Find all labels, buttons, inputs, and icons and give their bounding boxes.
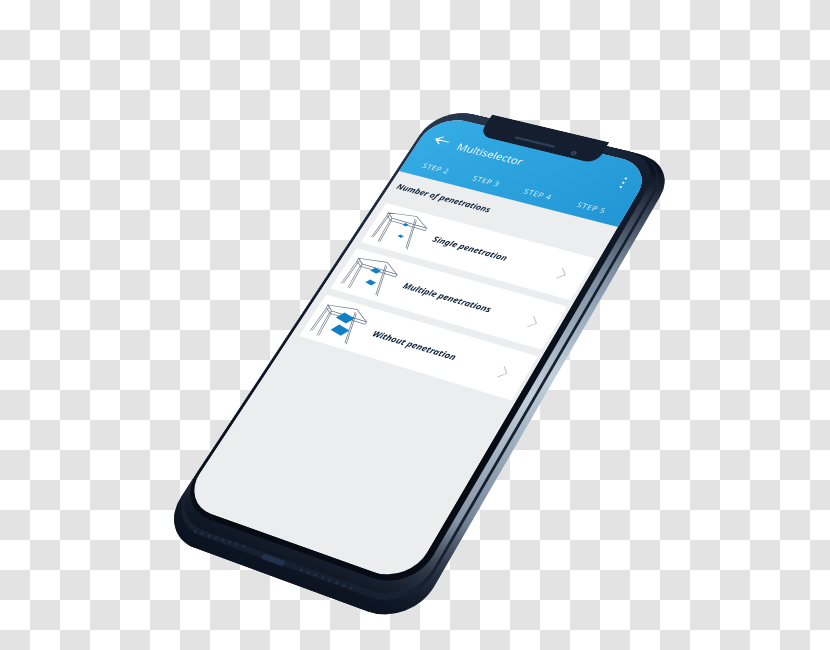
staticText: Number of penetrations — [394, 181, 494, 215]
staticText: STEP 3 — [471, 173, 503, 188]
staticText: Multiple penetrations — [401, 280, 494, 315]
staticText: STEP 2 — [421, 161, 452, 175]
button[interactable]: STEP 4 — [509, 182, 568, 206]
button[interactable]: STEP 2 — [408, 156, 465, 180]
button[interactable]: STEP 5 — [562, 195, 622, 220]
staticText: Without penetration — [370, 327, 459, 363]
staticText: Multiselector — [454, 140, 527, 168]
staticText: Single penetration — [430, 233, 510, 263]
button[interactable]: Without penetration — [299, 294, 538, 401]
button[interactable]: STEP 3 — [458, 169, 516, 193]
button[interactable]: More options — [616, 176, 631, 189]
staticText: STEP 4 — [522, 186, 555, 201]
button[interactable]: Single penetration — [360, 203, 596, 300]
button[interactable]: Multiple penetrations — [330, 248, 567, 350]
button[interactable]: Back — [431, 133, 453, 148]
staticText: STEP 5 — [575, 199, 609, 215]
